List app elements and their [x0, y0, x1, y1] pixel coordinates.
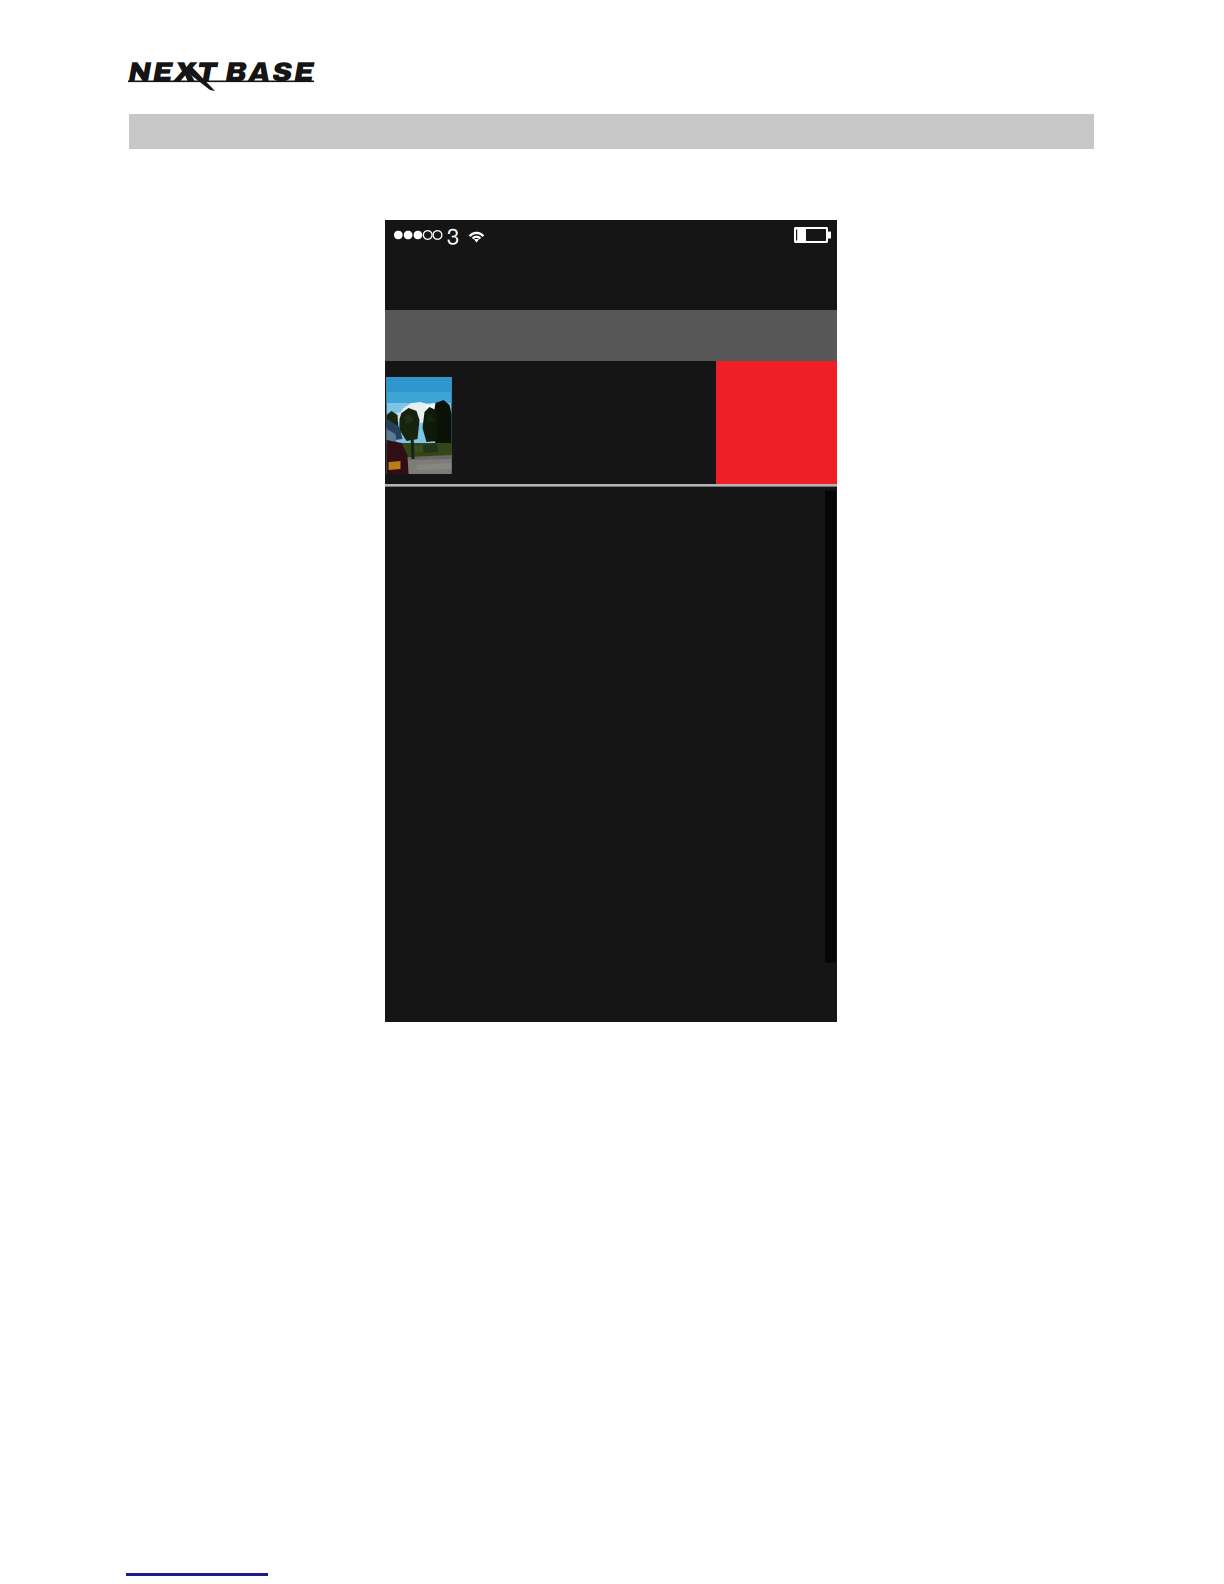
staticText: 3	[447, 219, 460, 251]
button[interactable]: www.nextbase.co.uk	[126, 1564, 268, 1576]
staticText: NEXT BASE	[128, 57, 314, 87]
button[interactable]: Recording thumbnail	[385, 361, 716, 484]
